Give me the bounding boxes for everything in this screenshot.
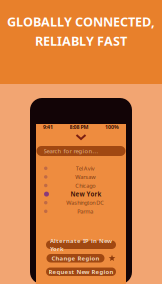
staticText: Warsaw: [75, 173, 95, 181]
staticText: GLOBALLY CONNECTED,: [7, 13, 155, 30]
button[interactable]: Favourite: [108, 255, 115, 262]
staticText: Request New Region: [48, 268, 113, 276]
staticText: RELIABLY FAST: [35, 32, 127, 50]
button[interactable]: Request New Region: [46, 267, 116, 276]
staticText: 100%: [105, 123, 119, 131]
staticText: Chicago: [75, 182, 95, 189]
staticText: Change Region: [51, 254, 99, 262]
staticText: New York: [70, 190, 101, 198]
staticText: Alternate IP in New York: [50, 237, 112, 253]
button[interactable]: Change Region: [46, 254, 104, 262]
staticText: Tel Aviv: [76, 164, 95, 172]
button[interactable]: Alternate IP in New York: [46, 240, 116, 249]
staticText: Search for region...: [43, 147, 98, 155]
staticText: Washington DC: [66, 199, 104, 206]
staticText: 9:41: [43, 123, 53, 131]
staticText: 8:08 PM: [69, 123, 88, 131]
staticText: Parma: [77, 207, 93, 215]
